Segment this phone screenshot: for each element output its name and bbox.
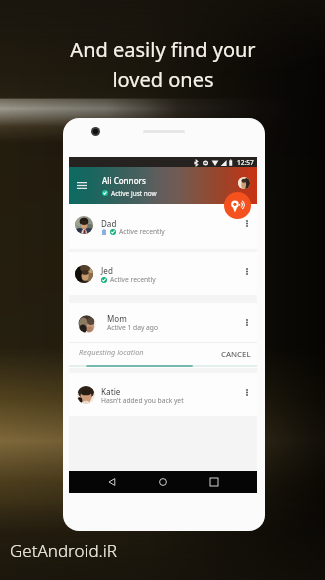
staticText: CANCEL [221, 349, 251, 360]
staticText: And easily find your [70, 36, 256, 63]
staticText: Dad [101, 218, 117, 229]
button[interactable]: Open navigation menu [71, 174, 93, 196]
staticText: Active 1 day ago [107, 323, 159, 332]
button[interactable]: Back [104, 474, 120, 490]
staticText: GetAndroid.iR [10, 539, 117, 562]
staticText: Requesting location [79, 347, 144, 357]
staticText: loved ones [112, 66, 214, 93]
button[interactable]: Request location [224, 192, 251, 219]
button[interactable]: CANCEL [219, 347, 253, 362]
button[interactable]: Mom [69, 303, 257, 343]
button[interactable]: More options [240, 315, 254, 329]
staticText: Active just now [111, 189, 157, 198]
button[interactable]: Profile [238, 177, 250, 189]
button[interactable]: Jed [69, 252, 257, 295]
button[interactable]: Recent apps [206, 474, 222, 490]
button[interactable]: More options [240, 264, 254, 278]
staticText: 12:57 [237, 158, 254, 167]
staticText: Katie [101, 386, 121, 397]
staticText: Ali Connors [102, 175, 146, 186]
button[interactable]: Katie [69, 373, 257, 416]
staticText: Mom [107, 313, 127, 324]
button[interactable]: More options [240, 216, 254, 230]
staticText: Active recently [119, 227, 165, 236]
staticText: Hasn't added you back yet [101, 396, 184, 405]
button[interactable]: Home [155, 474, 171, 490]
button[interactable]: Dad [69, 204, 257, 249]
button[interactable]: More options [240, 385, 254, 399]
staticText: Active recently [110, 275, 156, 284]
staticText: Jed [101, 265, 113, 276]
